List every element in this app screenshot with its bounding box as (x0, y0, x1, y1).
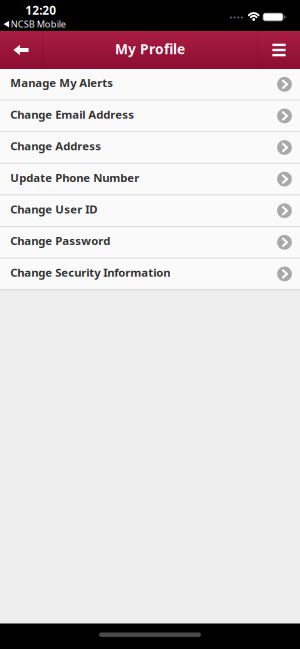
button[interactable]: Manage My Alerts (0, 69, 300, 100)
staticText: Change Security Information (10, 265, 170, 280)
staticText: NCSB Mobile (11, 18, 66, 30)
button[interactable]: Change Address (0, 132, 300, 163)
staticText: Change User ID (10, 201, 97, 217)
button[interactable]: Change Password (0, 227, 300, 258)
staticText: Change Email Address (10, 107, 134, 122)
staticText: Update Phone Number (10, 170, 139, 185)
button[interactable]: Menu (258, 31, 300, 69)
staticText: 12:20 (25, 2, 56, 18)
button[interactable]: Update Phone Number (0, 164, 300, 194)
button[interactable]: Back (0, 31, 42, 69)
button[interactable]: Change Security Information (0, 259, 300, 289)
staticText: Manage My Alerts (10, 75, 113, 90)
button[interactable]: Change Email Address (0, 101, 300, 131)
staticText: Change Password (10, 233, 110, 248)
staticText: My Profile (115, 39, 185, 58)
button[interactable]: Change User ID (0, 195, 300, 226)
staticText: Change Address (10, 138, 101, 154)
